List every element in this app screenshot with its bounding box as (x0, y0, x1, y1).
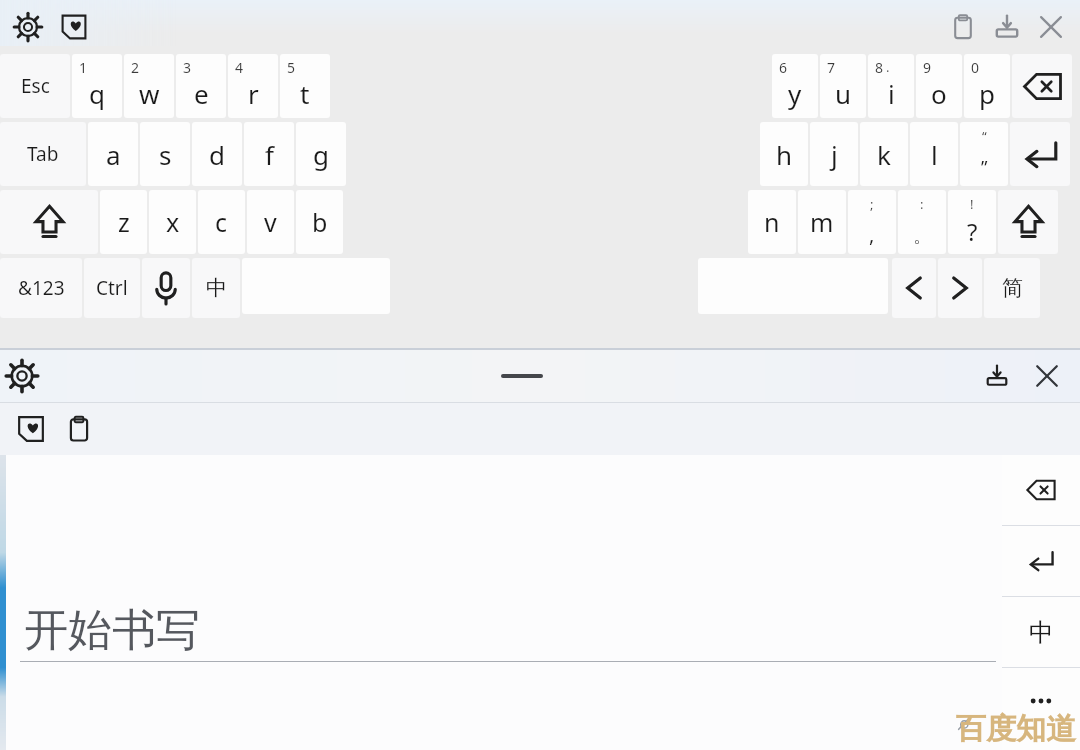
button[interactable]: g (296, 122, 346, 186)
staticText: Esc (21, 73, 50, 99)
button[interactable]: 简 (984, 258, 1040, 318)
staticText: 开始书写 (24, 603, 200, 658)
button[interactable]: s (140, 122, 190, 186)
button[interactable]: 5 (280, 54, 330, 118)
button[interactable]: 8 (868, 54, 914, 118)
button[interactable]: b (296, 190, 343, 254)
button[interactable]: Tab (0, 122, 86, 186)
staticText: h (776, 137, 793, 172)
staticText: “ (982, 127, 987, 145)
button[interactable]: 开始书写 (6, 455, 1002, 750)
staticText: 4 (235, 58, 244, 77)
staticText: x (166, 205, 180, 239)
button[interactable]: h (760, 122, 808, 186)
button[interactable]: Dock keyboard (990, 12, 1024, 42)
staticText: Ctrl (96, 275, 128, 301)
button[interactable]: j (810, 122, 858, 186)
button[interactable]: 6 (772, 54, 818, 118)
button[interactable]: Close panel (1028, 354, 1066, 398)
staticText: z (118, 205, 130, 239)
staticText: o (931, 76, 947, 111)
staticText: p (979, 76, 995, 111)
staticText: g (313, 137, 329, 172)
staticText: u (835, 76, 852, 111)
button[interactable]: Emoji and stickers (56, 12, 92, 42)
button[interactable]: Shift (998, 190, 1058, 254)
button[interactable]: Settings (10, 12, 46, 42)
button[interactable]: Move cursor left (892, 258, 936, 318)
button[interactable]: ; (848, 190, 896, 254)
staticText: n (764, 205, 780, 239)
button[interactable]: Close keyboard (1034, 12, 1068, 42)
button[interactable]: m (798, 190, 846, 254)
staticText: ? (967, 215, 978, 248)
staticText: t (300, 76, 310, 111)
button[interactable]: x (149, 190, 196, 254)
staticText: : (920, 195, 924, 213)
button[interactable]: More options (1002, 668, 1080, 750)
button[interactable]: Enter (1002, 526, 1080, 596)
button[interactable]: v (247, 190, 294, 254)
staticText: k (877, 137, 891, 172)
staticText: y (788, 76, 802, 111)
button[interactable]: Emoji and stickers (12, 409, 50, 449)
staticText: 6 (779, 58, 788, 77)
staticText: s (159, 137, 172, 172)
button[interactable]: 7 (820, 54, 866, 118)
staticText: j (831, 137, 838, 172)
button[interactable]: &123 (0, 258, 82, 318)
button[interactable]: Shift (0, 190, 98, 254)
button[interactable]: l (910, 122, 958, 186)
staticText: ” (981, 155, 988, 180)
button[interactable]: Clipboard (946, 12, 980, 42)
button[interactable]: 1 (72, 54, 122, 118)
button[interactable]: ! (948, 190, 996, 254)
staticText: l (931, 137, 938, 172)
staticText: ! (970, 195, 974, 213)
staticText: w (139, 76, 160, 111)
button[interactable]: c (198, 190, 245, 254)
staticText: 简 (1002, 275, 1023, 301)
button[interactable]: “ (960, 122, 1008, 186)
staticText: 百度知道 (956, 710, 1076, 748)
button[interactable]: Clipboard (60, 409, 98, 449)
button[interactable]: 2 (124, 54, 174, 118)
staticText: 5 (287, 58, 296, 77)
button[interactable]: 0 (964, 54, 1010, 118)
button[interactable]: Move cursor right (938, 258, 982, 318)
staticText: 3 (183, 58, 192, 77)
button[interactable]: Ctrl (84, 258, 140, 318)
button[interactable] (501, 374, 543, 378)
button[interactable]: n (748, 190, 796, 254)
button[interactable]: Settings (0, 350, 44, 402)
button[interactable]: : (898, 190, 946, 254)
button[interactable]: Enter (1010, 122, 1070, 186)
staticText: 8 (875, 58, 884, 77)
staticText: 中 (1029, 617, 1054, 648)
staticText: c (215, 205, 228, 239)
button[interactable]: Backspace (1012, 54, 1072, 118)
staticText: i (888, 76, 895, 111)
staticText: &123 (18, 275, 65, 301)
button[interactable]: 3 (176, 54, 226, 118)
staticText: 0 (971, 58, 980, 77)
button[interactable]: z (100, 190, 147, 254)
staticText: a (106, 137, 121, 172)
button[interactable]: 中 (192, 258, 240, 318)
staticText: 。 (913, 225, 931, 248)
button[interactable]: Backspace (1002, 455, 1080, 525)
button[interactable]: 中 (1002, 597, 1080, 667)
staticText: v (264, 205, 277, 239)
staticText: f (265, 137, 274, 172)
button[interactable]: 9 (916, 54, 962, 118)
button[interactable]: a (88, 122, 138, 186)
button[interactable]: k (860, 122, 908, 186)
button[interactable]: d (192, 122, 242, 186)
button[interactable]: f (244, 122, 294, 186)
button[interactable]: 4 (228, 54, 278, 118)
button[interactable]: Dock panel (978, 354, 1016, 398)
button[interactable]: Esc (0, 54, 70, 118)
button[interactable]: Voice input (142, 258, 190, 318)
